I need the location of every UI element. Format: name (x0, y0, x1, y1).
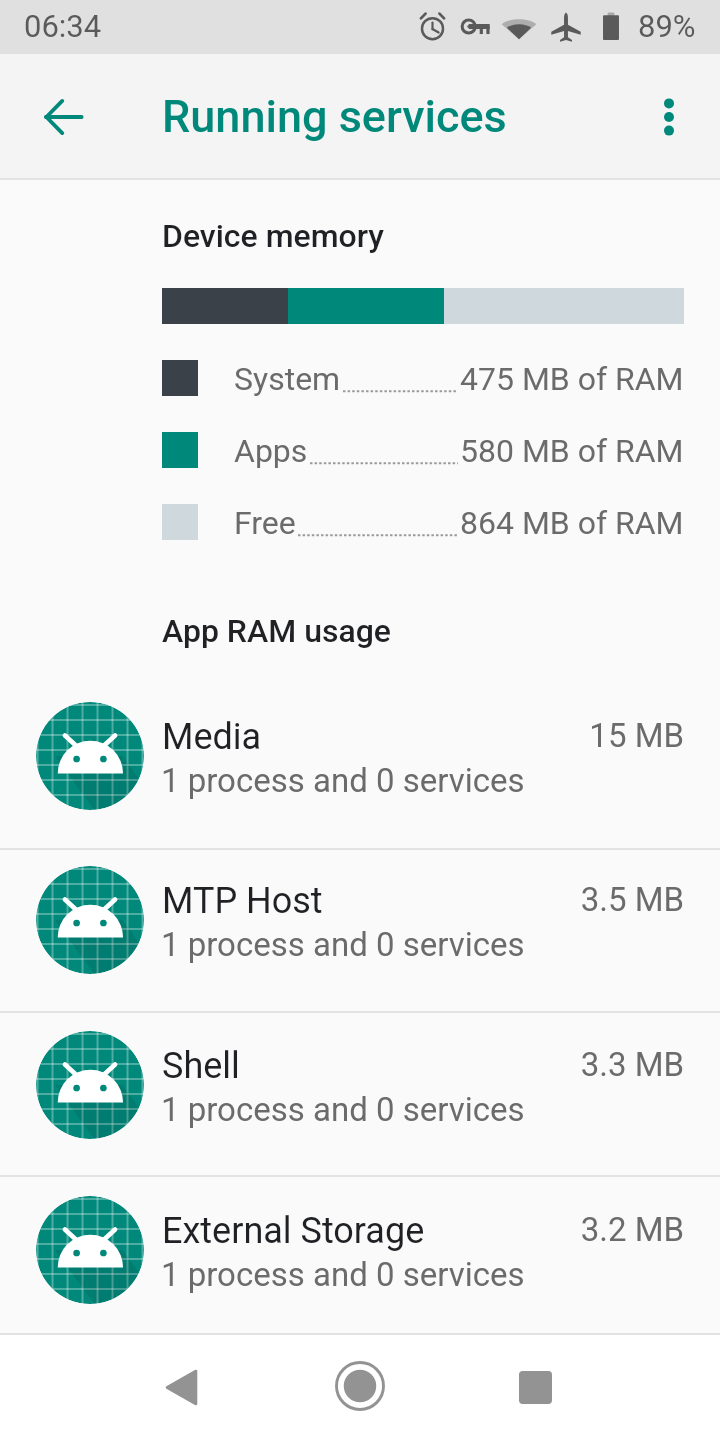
staticText: 3.3 MB (400, 1045, 684, 1084)
button[interactable]: Home (305, 1335, 415, 1440)
staticText: Running services (162, 90, 507, 143)
button[interactable]: Back (126, 1335, 236, 1440)
staticText: 475 MB of RAM (460, 360, 684, 398)
staticText: Shell (162, 1045, 240, 1087)
button[interactable]: MTP Host (0, 849, 720, 1011)
staticText: 89% (638, 8, 696, 44)
button[interactable]: Media (0, 685, 720, 848)
staticText: External Storage (162, 1210, 425, 1252)
staticText: Device memory (162, 217, 384, 255)
staticText: 3.2 MB (400, 1210, 684, 1249)
staticText: 864 MB of RAM (460, 504, 684, 542)
button[interactable]: More options (616, 54, 712, 180)
staticText: 580 MB of RAM (460, 432, 684, 470)
staticText: 1 process and 0 services (161, 1090, 525, 1129)
staticText: MTP Host (162, 880, 323, 922)
button[interactable]: Shell (0, 1014, 720, 1175)
staticText: 06:34 (24, 8, 102, 44)
staticText: System (234, 360, 341, 398)
staticText: 15 MB (400, 716, 684, 755)
staticText: 1 process and 0 services (161, 761, 525, 800)
button[interactable]: Recent apps (480, 1335, 590, 1440)
staticText: Free (234, 504, 296, 542)
staticText: Apps (234, 432, 308, 470)
button[interactable]: Navigate up (16, 54, 112, 180)
staticText: 1 process and 0 services (161, 925, 525, 964)
staticText: 3.5 MB (400, 880, 684, 919)
staticText: Media (162, 716, 262, 758)
staticText: 1 process and 0 services (161, 1255, 525, 1294)
staticText: App RAM usage (162, 612, 391, 650)
button[interactable]: External Storage (0, 1179, 720, 1333)
